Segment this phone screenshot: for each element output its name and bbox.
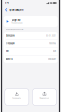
button[interactable]: Сохранить — [5, 88, 29, 105]
staticText: Валюта — [6, 58, 13, 60]
staticText: 30.01.2021 — [46, 34, 56, 37]
button[interactable]: Поделиться — [32, 88, 57, 105]
staticText: Операция — [6, 42, 15, 45]
staticText: Транзакция — [9, 8, 23, 11]
staticText: Покупка — [49, 42, 56, 45]
staticText: RUB — [53, 50, 56, 52]
staticText: Тип — [6, 50, 9, 52]
staticText: Развлечения — [12, 22, 23, 24]
staticText: Сохранить — [12, 97, 21, 99]
staticText: ИНФОРМАЦИЯ О ПЛАТЕЖЕ — [6, 29, 24, 30]
staticText: Google Play — [12, 19, 21, 21]
staticText: Поделиться — [39, 97, 49, 99]
staticText: 9:41 — [5, 2, 9, 4]
staticText: Проведена — [6, 34, 15, 37]
button[interactable]: Back — [5, 7, 8, 13]
staticText: Списание — [48, 58, 56, 60]
